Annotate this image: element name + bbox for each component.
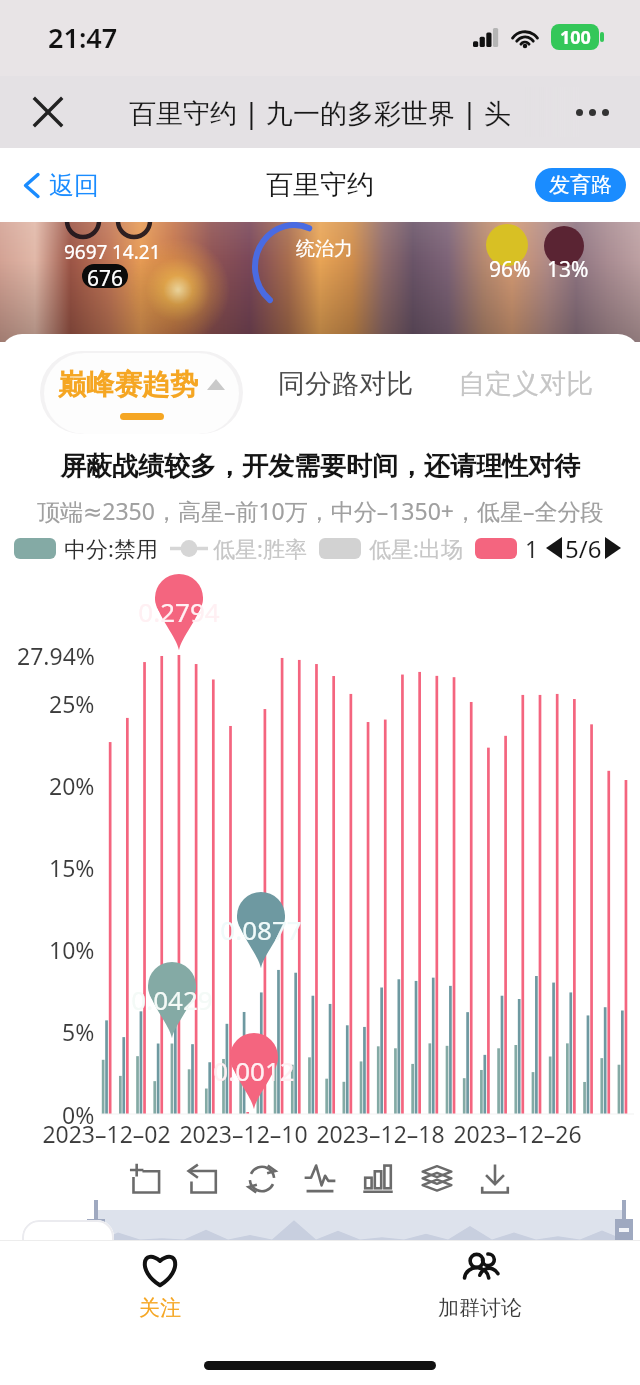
staticText: 低星:胜率: [213, 533, 307, 563]
staticText: 0.2794: [138, 594, 220, 629]
staticText: 27.94%: [17, 640, 95, 671]
staticText: 15%: [49, 852, 95, 883]
staticText: 0.0877: [220, 912, 302, 947]
button[interactable]: 返回: [0, 162, 111, 209]
staticText: 96%: [489, 255, 531, 284]
staticText: 加群讨论: [438, 1295, 522, 1321]
staticText: 0.0012: [213, 1053, 295, 1088]
button[interactable]: Add: [122, 1156, 168, 1202]
button[interactable]: 同分路对比: [255, 334, 435, 434]
button[interactable]: [44, 353, 239, 434]
staticText: 统治力: [296, 237, 353, 261]
button[interactable]: Previous page: [546, 537, 562, 559]
button[interactable]: Layers: [414, 1156, 460, 1202]
staticText: 中分:禁用: [64, 533, 158, 563]
staticText: 14.21: [112, 239, 161, 265]
staticText: 百里守约: [266, 168, 374, 202]
staticText: 10%: [49, 934, 95, 965]
staticText: 9697: [64, 239, 108, 265]
staticText: 2023–12–02: [42, 1118, 171, 1149]
staticText: 同分路对比: [278, 367, 413, 401]
staticText: 21:47: [48, 19, 118, 56]
button[interactable]: Bar chart: [355, 1156, 401, 1202]
staticText: 顶端≈2350，高星–前10万，中分–1350+，低星–全分段: [37, 495, 604, 526]
staticText: 关注: [139, 1295, 181, 1321]
staticText: 2023–12–26: [453, 1118, 582, 1149]
staticText: 100: [560, 25, 591, 50]
staticText: 发育路: [549, 172, 612, 198]
staticText: 25%: [49, 688, 95, 719]
staticText: 676: [87, 264, 124, 288]
button[interactable]: Next page: [605, 537, 621, 559]
staticText: 百里守约 | 九一的多彩世界 | 头: [129, 94, 511, 131]
button[interactable]: Refresh: [239, 1156, 285, 1202]
staticText: 巅峰赛趋势: [58, 367, 198, 402]
staticText: 2023–12–18: [316, 1118, 445, 1149]
button[interactable]: 关注: [0, 1241, 320, 1331]
staticText: 2023–12–10: [179, 1118, 308, 1149]
staticText: 返回: [49, 170, 99, 201]
staticText: 13%: [547, 255, 589, 284]
button[interactable]: Close: [18, 82, 78, 142]
staticText: 自定义对比: [458, 367, 593, 401]
staticText: 1: [525, 533, 539, 564]
button[interactable]: 发育路: [535, 168, 626, 202]
button[interactable]: Undo: [180, 1156, 226, 1202]
staticText: 低星:出场: [369, 533, 463, 563]
staticText: 5/6: [565, 532, 602, 565]
staticText: 20%: [49, 770, 95, 801]
button[interactable]: Line chart: [297, 1156, 343, 1202]
staticText: 屏蔽战绩较多，开发需要时间，还请理性对待: [60, 450, 580, 483]
staticText: 0.0429: [131, 982, 213, 1017]
staticText: 0%: [62, 1099, 95, 1130]
button[interactable]: More options: [562, 82, 622, 142]
staticText: 5%: [62, 1016, 95, 1047]
button[interactable]: 自定义对比: [435, 334, 615, 434]
button[interactable]: Download: [472, 1156, 518, 1202]
button[interactable]: 加群讨论: [320, 1241, 640, 1331]
